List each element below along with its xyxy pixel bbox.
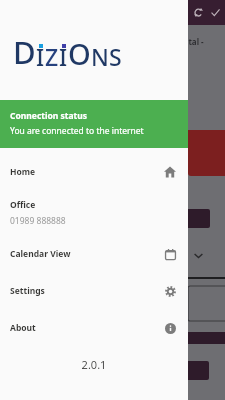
staticText: S: [109, 41, 122, 72]
button[interactable]: Connection status: [0, 100, 188, 148]
staticText: Connection status: [10, 110, 88, 122]
button[interactable]: Home: [0, 153, 188, 190]
staticText: 2.0.1: [0, 357, 188, 372]
other: About: [165, 323, 176, 334]
staticText: O: [68, 34, 91, 73]
staticText: I: [36, 41, 45, 72]
button[interactable]: Office: [0, 190, 188, 235]
staticText: Settings: [10, 285, 45, 297]
button[interactable]: Refresh: [190, 4, 207, 21]
other: Home: [164, 166, 176, 178]
staticText: D: [13, 31, 36, 73]
button[interactable]: Calendar View: [0, 235, 188, 272]
staticText: Office: [10, 199, 36, 211]
staticText: ital -: [186, 36, 204, 47]
staticText: About: [10, 322, 36, 334]
staticText: Z: [45, 41, 59, 72]
button[interactable]: Confirm: [207, 4, 224, 21]
staticText: Home: [10, 166, 36, 178]
other: Calendar View: [165, 249, 176, 260]
staticText: I: [59, 41, 68, 72]
staticText: N: [91, 41, 109, 72]
button[interactable]: Settings: [0, 272, 188, 309]
other: Settings: [165, 286, 176, 297]
staticText: 01989 888888: [10, 215, 66, 227]
staticText: You are connected to the internet: [10, 125, 144, 137]
staticText: Calendar View: [10, 248, 71, 260]
button[interactable]: About: [0, 309, 188, 346]
